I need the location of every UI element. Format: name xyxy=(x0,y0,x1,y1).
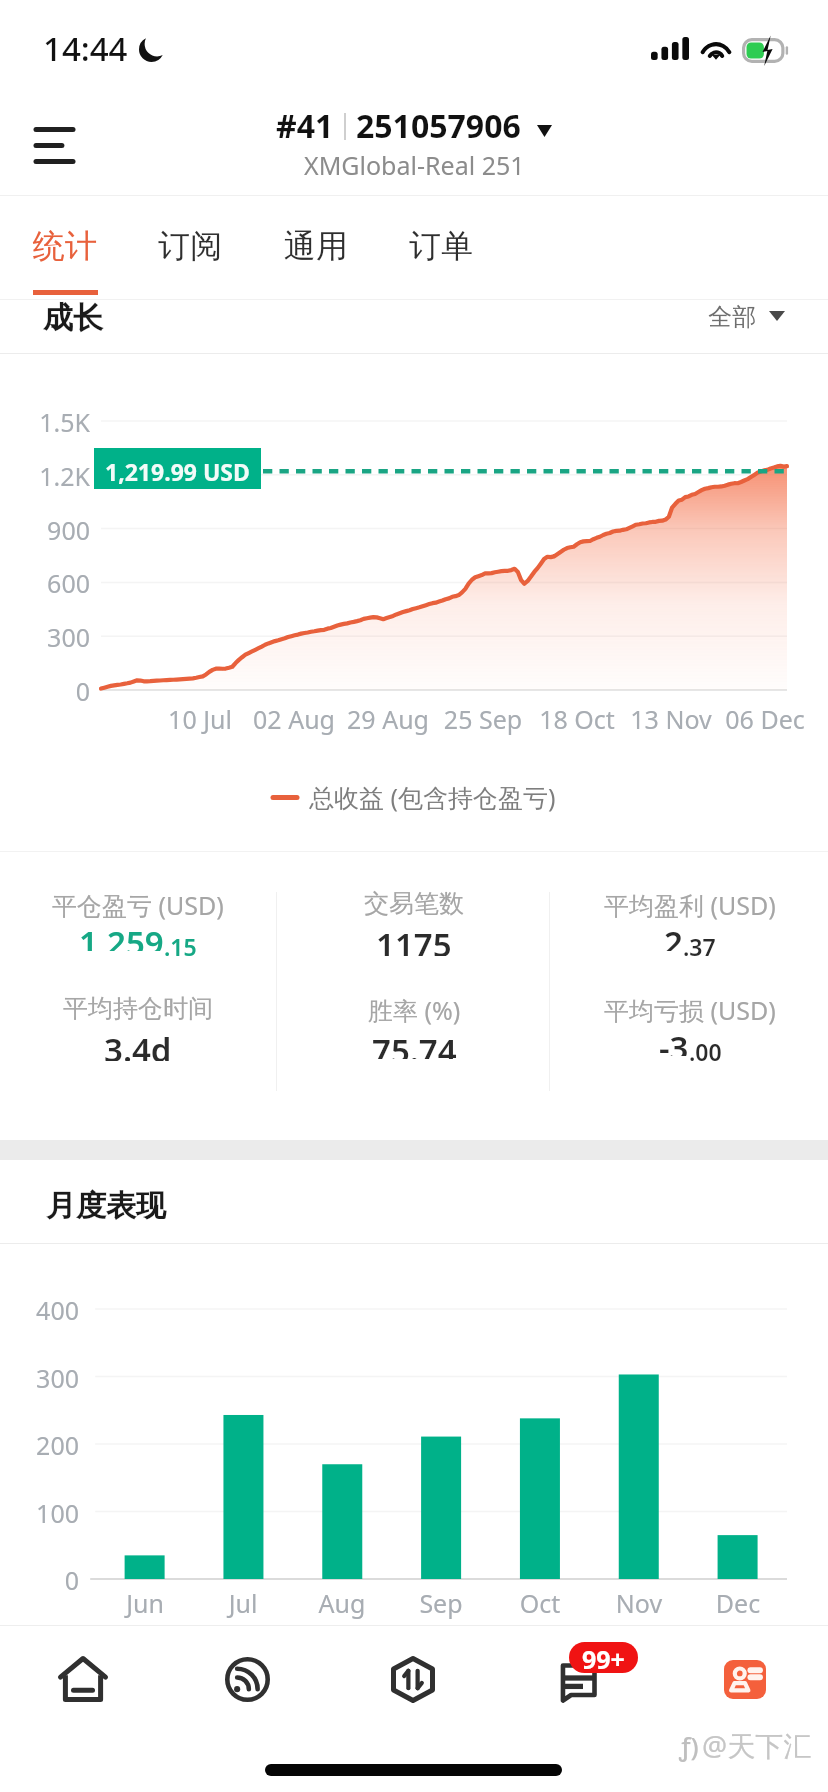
staticText: ƒ) xyxy=(679,1728,699,1763)
staticText: #41 xyxy=(276,104,334,148)
staticText: 200 xyxy=(0,1428,79,1462)
staticText: 统计 xyxy=(33,226,97,266)
button[interactable]: 全部 xyxy=(708,301,797,331)
staticText: 成长 xyxy=(43,299,103,337)
staticText: 251057906 xyxy=(356,104,521,148)
staticText: 14:44 xyxy=(43,26,128,71)
button[interactable]: 胜率 (%) xyxy=(276,956,552,1061)
staticText: 平均盈利 (USD) xyxy=(604,888,776,922)
button[interactable]: #41 xyxy=(276,104,552,182)
button[interactable]: Trade xyxy=(330,1625,496,1733)
staticText: Nov xyxy=(579,1586,699,1620)
button[interactable]: 平均持仓时间 xyxy=(0,956,276,1061)
staticText: Jun xyxy=(85,1586,205,1620)
button[interactable]: 通用 xyxy=(269,195,363,299)
staticText: 平仓盈亏 (USD) xyxy=(52,888,224,922)
staticText: 订单 xyxy=(409,226,473,266)
staticText: Dec xyxy=(678,1586,798,1620)
staticText: 99+ xyxy=(582,1642,625,1673)
staticText: Aug xyxy=(282,1586,402,1620)
staticText: .15 xyxy=(164,931,197,962)
staticText: 平均持仓时间 xyxy=(63,993,213,1024)
staticText: 1.5K xyxy=(0,405,90,439)
staticText: @天下汇 xyxy=(702,1726,812,1764)
staticText: 75.74 xyxy=(372,1028,457,1059)
button[interactable]: Menu xyxy=(14,102,94,182)
button[interactable]: 交易笔数 xyxy=(276,851,552,956)
button[interactable]: 订阅 xyxy=(143,195,237,299)
staticText: 02 Aug xyxy=(234,702,354,736)
staticText: 0 xyxy=(0,674,90,708)
staticText: 0 xyxy=(0,1563,79,1597)
staticText: 600 xyxy=(0,566,90,600)
staticText: 06 Dec xyxy=(705,702,825,736)
staticText: 订阅 xyxy=(158,226,222,266)
button[interactable]: 平均亏损 (USD) xyxy=(552,956,828,1061)
staticText: 全部 xyxy=(708,302,756,332)
staticText: 1,259 xyxy=(79,920,164,951)
staticText: 月度表现 xyxy=(46,1187,166,1225)
button[interactable]: 统计 xyxy=(18,195,112,299)
staticText: 1175 xyxy=(376,922,452,956)
staticText: 胜率 (%) xyxy=(368,993,461,1027)
staticText: 通用 xyxy=(284,226,348,266)
staticText: 25 Sep xyxy=(423,702,543,736)
staticText: 10 Jul xyxy=(140,702,260,736)
staticText: .37 xyxy=(683,931,716,962)
button[interactable]: 订单 xyxy=(394,195,488,299)
staticText: .00 xyxy=(689,1036,722,1067)
button[interactable]: Profile xyxy=(662,1625,828,1733)
staticText: 900 xyxy=(0,513,90,547)
staticText: 29 Aug xyxy=(328,702,448,736)
staticText: Oct xyxy=(480,1586,600,1620)
staticText: 13 Nov xyxy=(611,702,731,736)
staticText: 平均亏损 (USD) xyxy=(604,993,776,1027)
staticText: 总收益 (包含持仓盈亏) xyxy=(309,780,556,814)
button[interactable]: Messages xyxy=(496,1625,662,1733)
button[interactable]: Signals xyxy=(165,1625,330,1733)
staticText: 交易笔数 xyxy=(364,888,464,919)
staticText: 1,219.99 USD xyxy=(105,456,250,487)
staticText: 1.2K xyxy=(0,459,90,493)
staticText: XMGlobal-Real 251 xyxy=(304,148,525,182)
staticText: 300 xyxy=(0,1361,79,1395)
staticText: 2 xyxy=(664,920,683,951)
staticText: Jul xyxy=(183,1586,303,1620)
staticText: Sep xyxy=(381,1586,501,1620)
button[interactable]: Home xyxy=(0,1625,165,1733)
staticText: 300 xyxy=(0,620,90,654)
button[interactable]: 平均盈利 (USD) xyxy=(552,851,828,956)
staticText: 400 xyxy=(0,1293,79,1327)
staticText: -3 xyxy=(659,1025,689,1056)
staticText: 3.4d xyxy=(104,1027,172,1061)
staticText: 18 Oct xyxy=(517,702,637,736)
staticText: 100 xyxy=(0,1496,79,1530)
button[interactable]: 平仓盈亏 (USD) xyxy=(0,851,276,956)
